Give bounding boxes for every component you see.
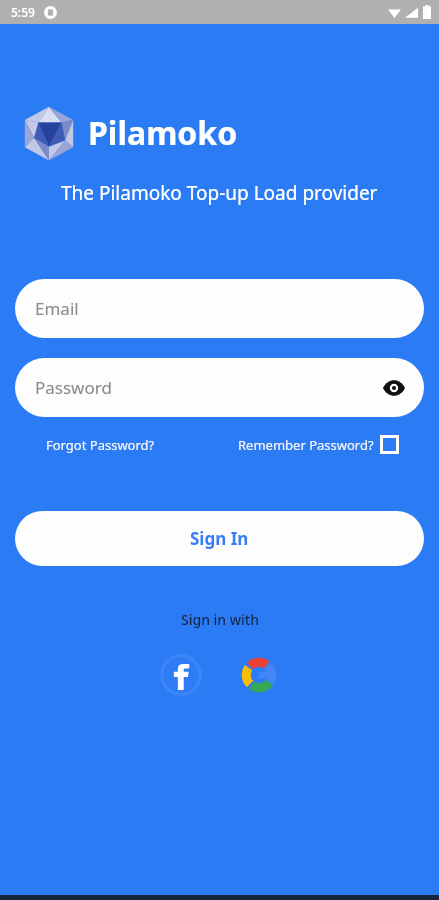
button[interactable]: Email (15, 279, 424, 338)
other: Show password (382, 376, 406, 400)
button[interactable]: Sign In (15, 511, 424, 566)
staticText: Pilamoko (88, 111, 238, 155)
staticText: 5:59 (11, 4, 35, 20)
button[interactable]: Sign in with Google (235, 651, 283, 699)
staticText: Forgot Password? (46, 436, 155, 454)
staticText: The Pilamoko Top-up Load provider (61, 180, 378, 206)
button[interactable]: Password (15, 358, 424, 417)
button[interactable]: Forgot Password? (46, 432, 155, 458)
button[interactable]: Remember Password? (238, 431, 399, 458)
staticText: Sign In (190, 527, 249, 550)
staticText: Email (35, 297, 79, 320)
staticText: Sign in with (181, 610, 259, 629)
staticText: Password (35, 376, 112, 399)
button[interactable]: Sign in with Facebook (157, 651, 205, 699)
staticText: Remember Password? (238, 436, 374, 454)
